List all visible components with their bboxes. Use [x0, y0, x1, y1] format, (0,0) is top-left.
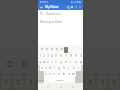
button[interactable]: q	[38, 59, 42, 65]
button[interactable]: 4	[50, 53, 54, 59]
staticText: t	[55, 60, 57, 64]
staticText: 9	[75, 54, 77, 58]
button[interactable]: a	[40, 65, 44, 71]
button[interactable]: Back	[39, 5, 44, 10]
staticText: a	[41, 66, 43, 70]
button[interactable]: t	[54, 59, 58, 65]
staticText: 0	[80, 54, 82, 58]
button[interactable]: 7	[63, 53, 68, 59]
button[interactable]: Back	[45, 84, 51, 90]
button[interactable]: v	[56, 71, 61, 77]
button[interactable]: 9	[73, 53, 78, 59]
button[interactable]: r	[50, 59, 54, 65]
button[interactable]: More options	[78, 5, 82, 9]
button[interactable]: m	[71, 71, 76, 77]
staticText: b	[63, 72, 65, 76]
button[interactable]: 8	[68, 53, 73, 59]
staticText: u	[65, 60, 67, 64]
staticText: 1	[4, 77, 9, 87]
staticText: Document	[46, 12, 61, 16]
staticText: r	[51, 60, 53, 64]
button[interactable]: w	[42, 59, 46, 65]
button[interactable]: s	[44, 65, 48, 71]
staticText: v	[58, 72, 60, 76]
button[interactable]: p	[78, 59, 83, 65]
button[interactable]: j	[66, 65, 71, 71]
button[interactable]: Recents	[70, 84, 76, 90]
staticText: 6	[64, 77, 69, 87]
staticText: My Drive	[45, 5, 59, 9]
staticText: y	[60, 60, 62, 64]
button[interactable]: Home	[58, 84, 64, 90]
button[interactable]: o	[73, 59, 78, 65]
button[interactable]: i	[68, 59, 73, 65]
staticText: z	[45, 72, 47, 76]
button[interactable]: 6	[58, 53, 63, 59]
button[interactable]: g	[56, 65, 61, 71]
button[interactable]: ?123	[38, 77, 44, 83]
button[interactable]: h	[61, 65, 66, 71]
button[interactable]: Search	[66, 5, 70, 9]
staticText: 2	[43, 54, 45, 58]
staticText: d	[49, 66, 51, 70]
button[interactable]: Grid view	[70, 5, 74, 9]
button[interactable]: English	[49, 77, 70, 83]
staticText: ,	[46, 78, 47, 82]
button[interactable]: c	[52, 71, 56, 77]
staticText: k	[73, 66, 75, 70]
button[interactable]: 5	[54, 53, 58, 59]
button[interactable]: d	[48, 65, 52, 71]
staticText: .	[72, 78, 73, 82]
staticText: 3	[47, 54, 49, 58]
button[interactable]: Toolbar item 3	[55, 47, 59, 51]
button[interactable]: Toolbar item 2	[50, 47, 54, 51]
button[interactable]: .	[70, 77, 75, 83]
button[interactable]: 3	[46, 53, 50, 59]
staticText: c	[53, 72, 55, 76]
button[interactable]: ,	[44, 77, 49, 83]
staticText: ?123	[39, 79, 44, 82]
button[interactable]: Toolbar item 1	[45, 47, 49, 51]
staticText: q	[39, 60, 41, 64]
staticText: 8	[70, 54, 72, 58]
staticText: h	[63, 66, 65, 70]
staticText: 6	[60, 54, 62, 58]
staticText: 4	[40, 77, 45, 87]
button[interactable]: z	[44, 71, 48, 77]
staticText: 9	[100, 77, 105, 87]
button[interactable]: 0	[78, 53, 83, 59]
staticText: 8	[88, 77, 93, 87]
staticText: i	[70, 60, 71, 64]
staticText: English	[56, 79, 64, 82]
staticText: f	[53, 66, 55, 70]
button[interactable]: Toolbar item 4	[60, 47, 64, 51]
button[interactable]: Sort	[74, 5, 78, 9]
staticText: 0	[112, 77, 117, 87]
button[interactable]: Toolbar item 0	[40, 47, 44, 51]
button[interactable]: l	[76, 65, 81, 71]
staticText: s	[45, 66, 47, 70]
staticText: n	[68, 72, 70, 76]
staticText: g	[58, 66, 60, 70]
button[interactable]: 1	[38, 53, 42, 59]
staticText: 2	[16, 77, 21, 87]
staticText: e	[47, 60, 49, 64]
staticText: w	[43, 60, 46, 64]
staticText: 7	[65, 54, 67, 58]
button[interactable]: e	[46, 59, 50, 65]
button[interactable]: b	[61, 71, 66, 77]
button[interactable]: k	[71, 65, 76, 71]
staticText: 5	[55, 54, 57, 58]
button[interactable]: y	[58, 59, 63, 65]
button[interactable]: f	[52, 65, 56, 71]
button[interactable]: u	[63, 59, 68, 65]
staticText: p	[80, 60, 82, 64]
button[interactable]: n	[66, 71, 71, 77]
button[interactable]: 2	[42, 53, 46, 59]
button[interactable]: x	[48, 71, 52, 77]
staticText: x	[49, 72, 51, 76]
staticText: 7	[76, 77, 81, 87]
